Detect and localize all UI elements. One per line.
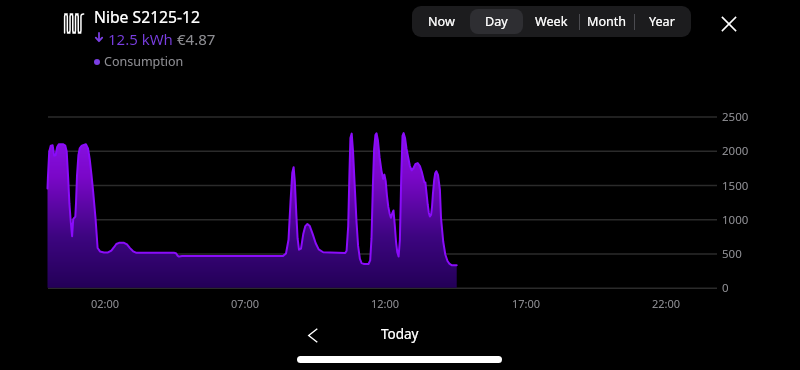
button[interactable]: Day [469,6,524,37]
staticText: Day [485,13,508,30]
staticText: 1000 [722,212,749,228]
button[interactable]: Week [524,6,579,37]
staticText: Today [381,325,419,343]
button[interactable]: Year [634,6,689,37]
staticText: 12.5 kWh [108,29,177,49]
staticText: Week [535,13,568,30]
staticText: 02:00 [85,296,125,311]
staticText: 12:00 [365,296,405,311]
staticText: 17:00 [506,296,546,311]
staticText: Consumption [104,53,184,70]
staticText: 1500 [722,178,749,194]
button[interactable]: Month [579,6,634,37]
button[interactable]: Close [713,8,745,40]
staticText: 0 [722,280,729,296]
staticText: Now [428,13,455,30]
staticText: 500 [722,246,742,262]
staticText: 22:00 [646,296,686,311]
staticText: Month [587,13,627,30]
staticText: Nibe S2125-12 [94,6,201,27]
staticText: 2000 [722,143,749,159]
button[interactable]: Today [370,318,430,350]
staticText: Year [649,13,675,30]
button[interactable]: Now [414,6,469,37]
staticText: 07:00 [225,296,265,311]
staticText: €4.87 [177,29,216,49]
button[interactable]: Previous day [297,319,329,351]
staticText: 2500 [722,109,749,125]
